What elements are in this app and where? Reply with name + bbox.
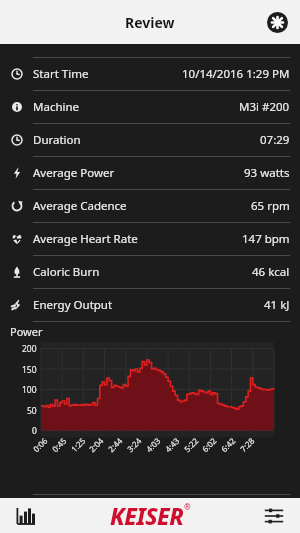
button[interactable]: Average Power	[0, 157, 300, 190]
staticText: 0	[32, 425, 37, 437]
button[interactable]: Average Heart Rate	[0, 223, 300, 256]
staticText: Average Power	[33, 165, 115, 181]
button[interactable]: Duration	[0, 124, 300, 157]
staticText: 7:28	[237, 435, 257, 454]
button[interactable]: Charts	[0, 498, 52, 533]
staticText: 4:03	[143, 435, 163, 454]
staticText: 50	[27, 405, 37, 417]
staticText: 0:45	[49, 435, 69, 454]
staticText: 150	[22, 364, 37, 376]
button[interactable]: Machine	[0, 91, 300, 124]
staticText: 147 bpm	[242, 231, 290, 247]
staticText: 3:24	[124, 435, 144, 454]
staticText: 200	[22, 343, 37, 355]
staticText: 6:02	[199, 435, 219, 454]
staticText: Power	[10, 324, 43, 339]
button[interactable]: Close	[264, 9, 290, 35]
staticText: Average Heart Rate	[33, 231, 138, 247]
staticText: Start Time	[33, 66, 89, 82]
staticText: M3i #200	[239, 99, 290, 115]
button[interactable]: Caloric Burn	[0, 256, 300, 289]
staticText: 6:42	[218, 435, 238, 454]
staticText: 0:06	[30, 435, 50, 454]
staticText: 65 rpm	[251, 198, 290, 214]
staticText: Machine	[33, 99, 80, 115]
staticText: ®	[184, 501, 191, 512]
staticText: Energy Output	[33, 297, 113, 313]
staticText: 10/14/2016 1:29 PM	[182, 66, 290, 82]
staticText: Duration	[33, 132, 81, 148]
staticText: 2:44	[105, 435, 125, 454]
staticText: 100	[22, 384, 37, 396]
staticText: 93 watts	[244, 165, 290, 181]
button[interactable]: Average Cadence	[0, 190, 300, 223]
staticText: Average Cadence	[33, 198, 127, 214]
button[interactable]: Start Time	[0, 58, 300, 91]
staticText: KEISER	[110, 500, 184, 531]
staticText: 2:04	[86, 435, 106, 454]
staticText: 07:29	[260, 132, 290, 148]
staticText: 5:22	[181, 435, 201, 454]
staticText: Caloric Burn	[33, 264, 100, 280]
staticText: 46 kcal	[252, 264, 290, 280]
staticText: 41 kJ	[264, 297, 290, 313]
button[interactable]: Energy Output	[0, 289, 300, 322]
staticText: Review	[125, 13, 175, 32]
staticText: 1:25	[68, 435, 88, 454]
button[interactable]: Settings	[248, 498, 300, 533]
staticText: 4:43	[162, 435, 182, 454]
